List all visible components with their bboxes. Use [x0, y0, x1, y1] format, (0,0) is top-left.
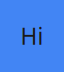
- staticText: Hi: [20, 21, 43, 51]
